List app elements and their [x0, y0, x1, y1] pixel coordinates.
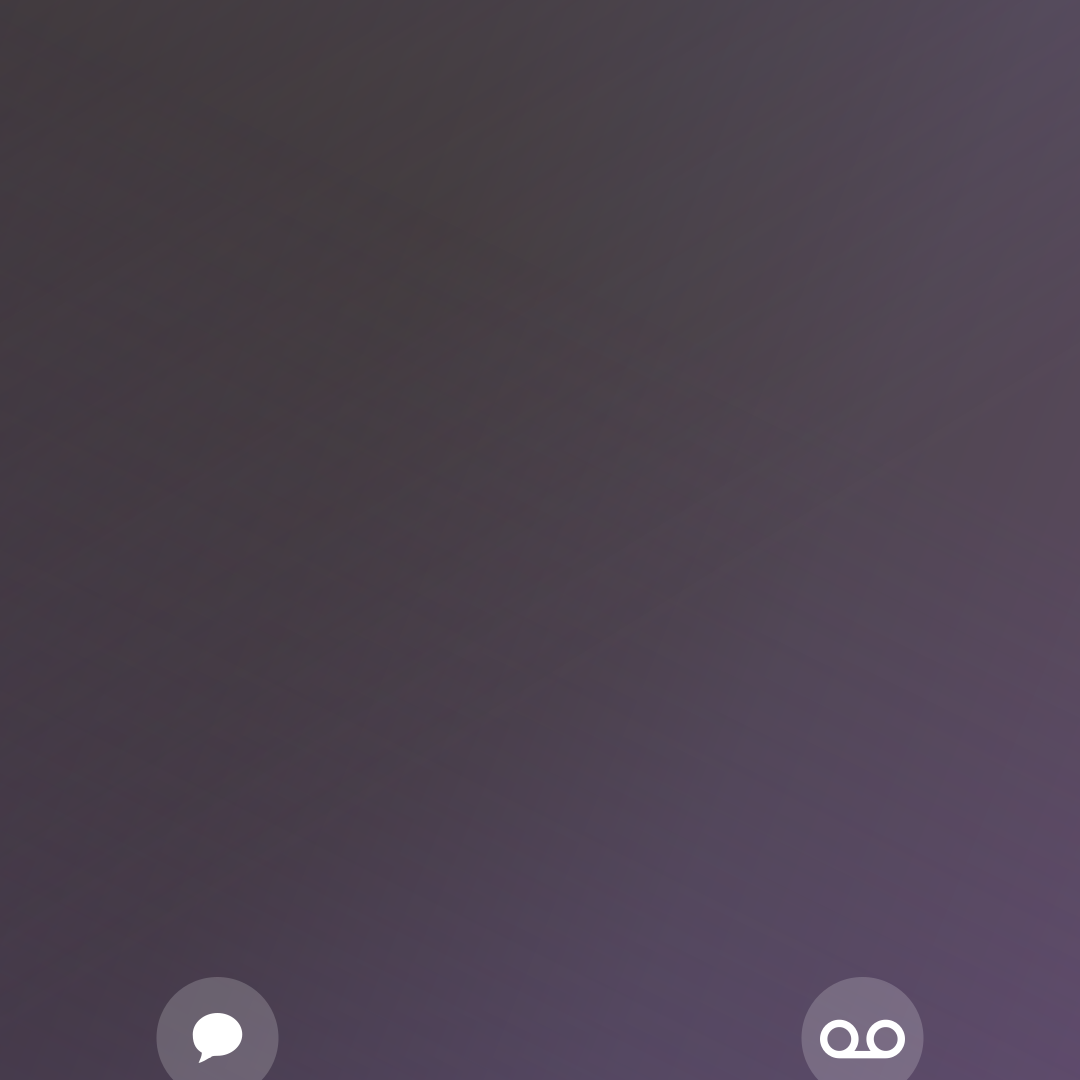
- button[interactable]: Voicemail: [801, 977, 923, 1080]
- button[interactable]: Message: [156, 977, 278, 1080]
